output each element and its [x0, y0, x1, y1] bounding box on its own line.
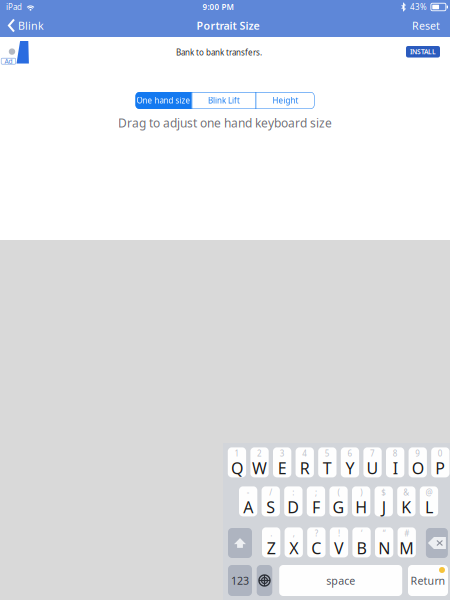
button[interactable]: 9	[409, 448, 427, 478]
staticText: ;	[315, 487, 317, 498]
button[interactable]: &	[397, 487, 415, 517]
button[interactable]: ,	[285, 528, 303, 558]
button[interactable]: Blink Lift	[192, 92, 255, 109]
staticText: &	[403, 487, 409, 498]
button[interactable]: Advertisement	[0, 37, 34, 68]
button[interactable]: 3	[273, 448, 291, 478]
button[interactable]: 5	[318, 448, 336, 478]
staticText: D	[287, 496, 299, 518]
staticText: ‘	[361, 528, 362, 539]
staticText: )	[360, 487, 362, 498]
button[interactable]: 2	[250, 448, 269, 478]
staticText: S	[266, 496, 275, 518]
staticText: 3	[280, 448, 285, 459]
staticText: I	[393, 457, 398, 479]
staticText: C	[311, 537, 321, 559]
staticText: -	[247, 487, 250, 498]
staticText: K	[401, 496, 411, 518]
staticText: #	[404, 528, 409, 539]
staticText: B	[356, 537, 366, 559]
staticText: U	[366, 457, 378, 479]
staticText: 2	[257, 448, 262, 459]
staticText: $	[381, 487, 386, 498]
staticText: G	[332, 496, 344, 518]
button[interactable]: 8	[386, 448, 404, 478]
staticText: (	[337, 487, 339, 498]
staticText: E	[278, 457, 287, 479]
button[interactable]: (	[329, 487, 348, 517]
staticText: 9	[415, 448, 420, 459]
staticText: Reset	[412, 18, 440, 33]
staticText: 6	[347, 448, 352, 459]
button[interactable]: Bank to bank transfers.	[0, 37, 450, 68]
staticText: T	[323, 457, 332, 479]
button[interactable]: One hand size	[135, 92, 191, 109]
button[interactable]: )	[352, 487, 370, 517]
button[interactable]: Delete	[426, 528, 448, 558]
button[interactable]: 7	[363, 448, 382, 478]
button[interactable]: Next keyboard	[257, 565, 272, 596]
button[interactable]: -	[239, 487, 257, 517]
staticText: 7	[370, 448, 375, 459]
button[interactable]: $	[375, 487, 393, 517]
staticText: P	[435, 457, 445, 479]
staticText: 4	[302, 448, 307, 459]
staticText: L	[425, 496, 433, 518]
button[interactable]: Reset	[405, 14, 445, 36]
button[interactable]: Shift	[228, 528, 252, 558]
button[interactable]: 6	[341, 448, 359, 478]
button[interactable]: ‘	[352, 528, 371, 558]
staticText: iPad	[6, 2, 22, 12]
button[interactable]: /	[262, 487, 280, 517]
staticText: 9:00 PM	[203, 2, 234, 12]
staticText: .	[270, 528, 272, 539]
staticText: Drag to adjust one hand keyboard size	[118, 115, 332, 131]
staticText: O	[412, 457, 424, 479]
button[interactable]: .	[262, 528, 280, 558]
staticText: Blink	[18, 18, 44, 33]
staticText: Ad	[4, 57, 12, 66]
staticText: Bank to bank transfers.	[176, 47, 262, 58]
staticText: 43%	[410, 2, 427, 12]
staticText: Y	[345, 457, 354, 479]
staticText: W	[252, 457, 267, 479]
staticText: Portrait Size	[196, 18, 259, 33]
staticText: /	[269, 487, 272, 498]
button[interactable]: @	[420, 487, 438, 517]
staticText: :	[292, 487, 294, 498]
button[interactable]: INSTALL	[406, 46, 440, 57]
staticText: ?	[315, 528, 318, 539]
button[interactable]: :	[284, 487, 302, 517]
staticText: Blink Lift	[208, 95, 240, 106]
staticText: @	[425, 487, 432, 498]
staticText: A	[243, 496, 253, 518]
staticText: ,	[293, 528, 295, 539]
button[interactable]: 0	[431, 448, 449, 478]
button[interactable]: #	[398, 528, 416, 558]
staticText: INSTALL	[410, 47, 436, 56]
button[interactable]: 4	[296, 448, 314, 478]
button[interactable]: 123	[228, 565, 252, 596]
button[interactable]: !	[330, 528, 348, 558]
button[interactable]: 1	[228, 448, 246, 478]
staticText: R	[300, 457, 310, 479]
staticText: One hand size	[136, 95, 190, 106]
button[interactable]: “	[375, 528, 393, 558]
staticText: space	[326, 573, 355, 588]
staticText: X	[289, 537, 298, 559]
staticText: 5	[325, 448, 330, 459]
staticText: 0	[438, 448, 443, 459]
staticText: N	[378, 537, 390, 559]
button[interactable]: ;	[307, 487, 325, 517]
button[interactable]: ?	[307, 528, 325, 558]
staticText: M	[399, 537, 414, 559]
staticText: F	[312, 496, 320, 518]
button[interactable]: Height	[256, 92, 314, 109]
staticText: V	[334, 537, 344, 559]
button[interactable]: space	[279, 565, 402, 596]
staticText: Return	[410, 573, 445, 588]
staticText: Z	[267, 537, 276, 559]
button[interactable]: Blink	[4, 14, 51, 36]
button[interactable]: Return	[408, 565, 448, 596]
staticText: !	[338, 528, 340, 539]
